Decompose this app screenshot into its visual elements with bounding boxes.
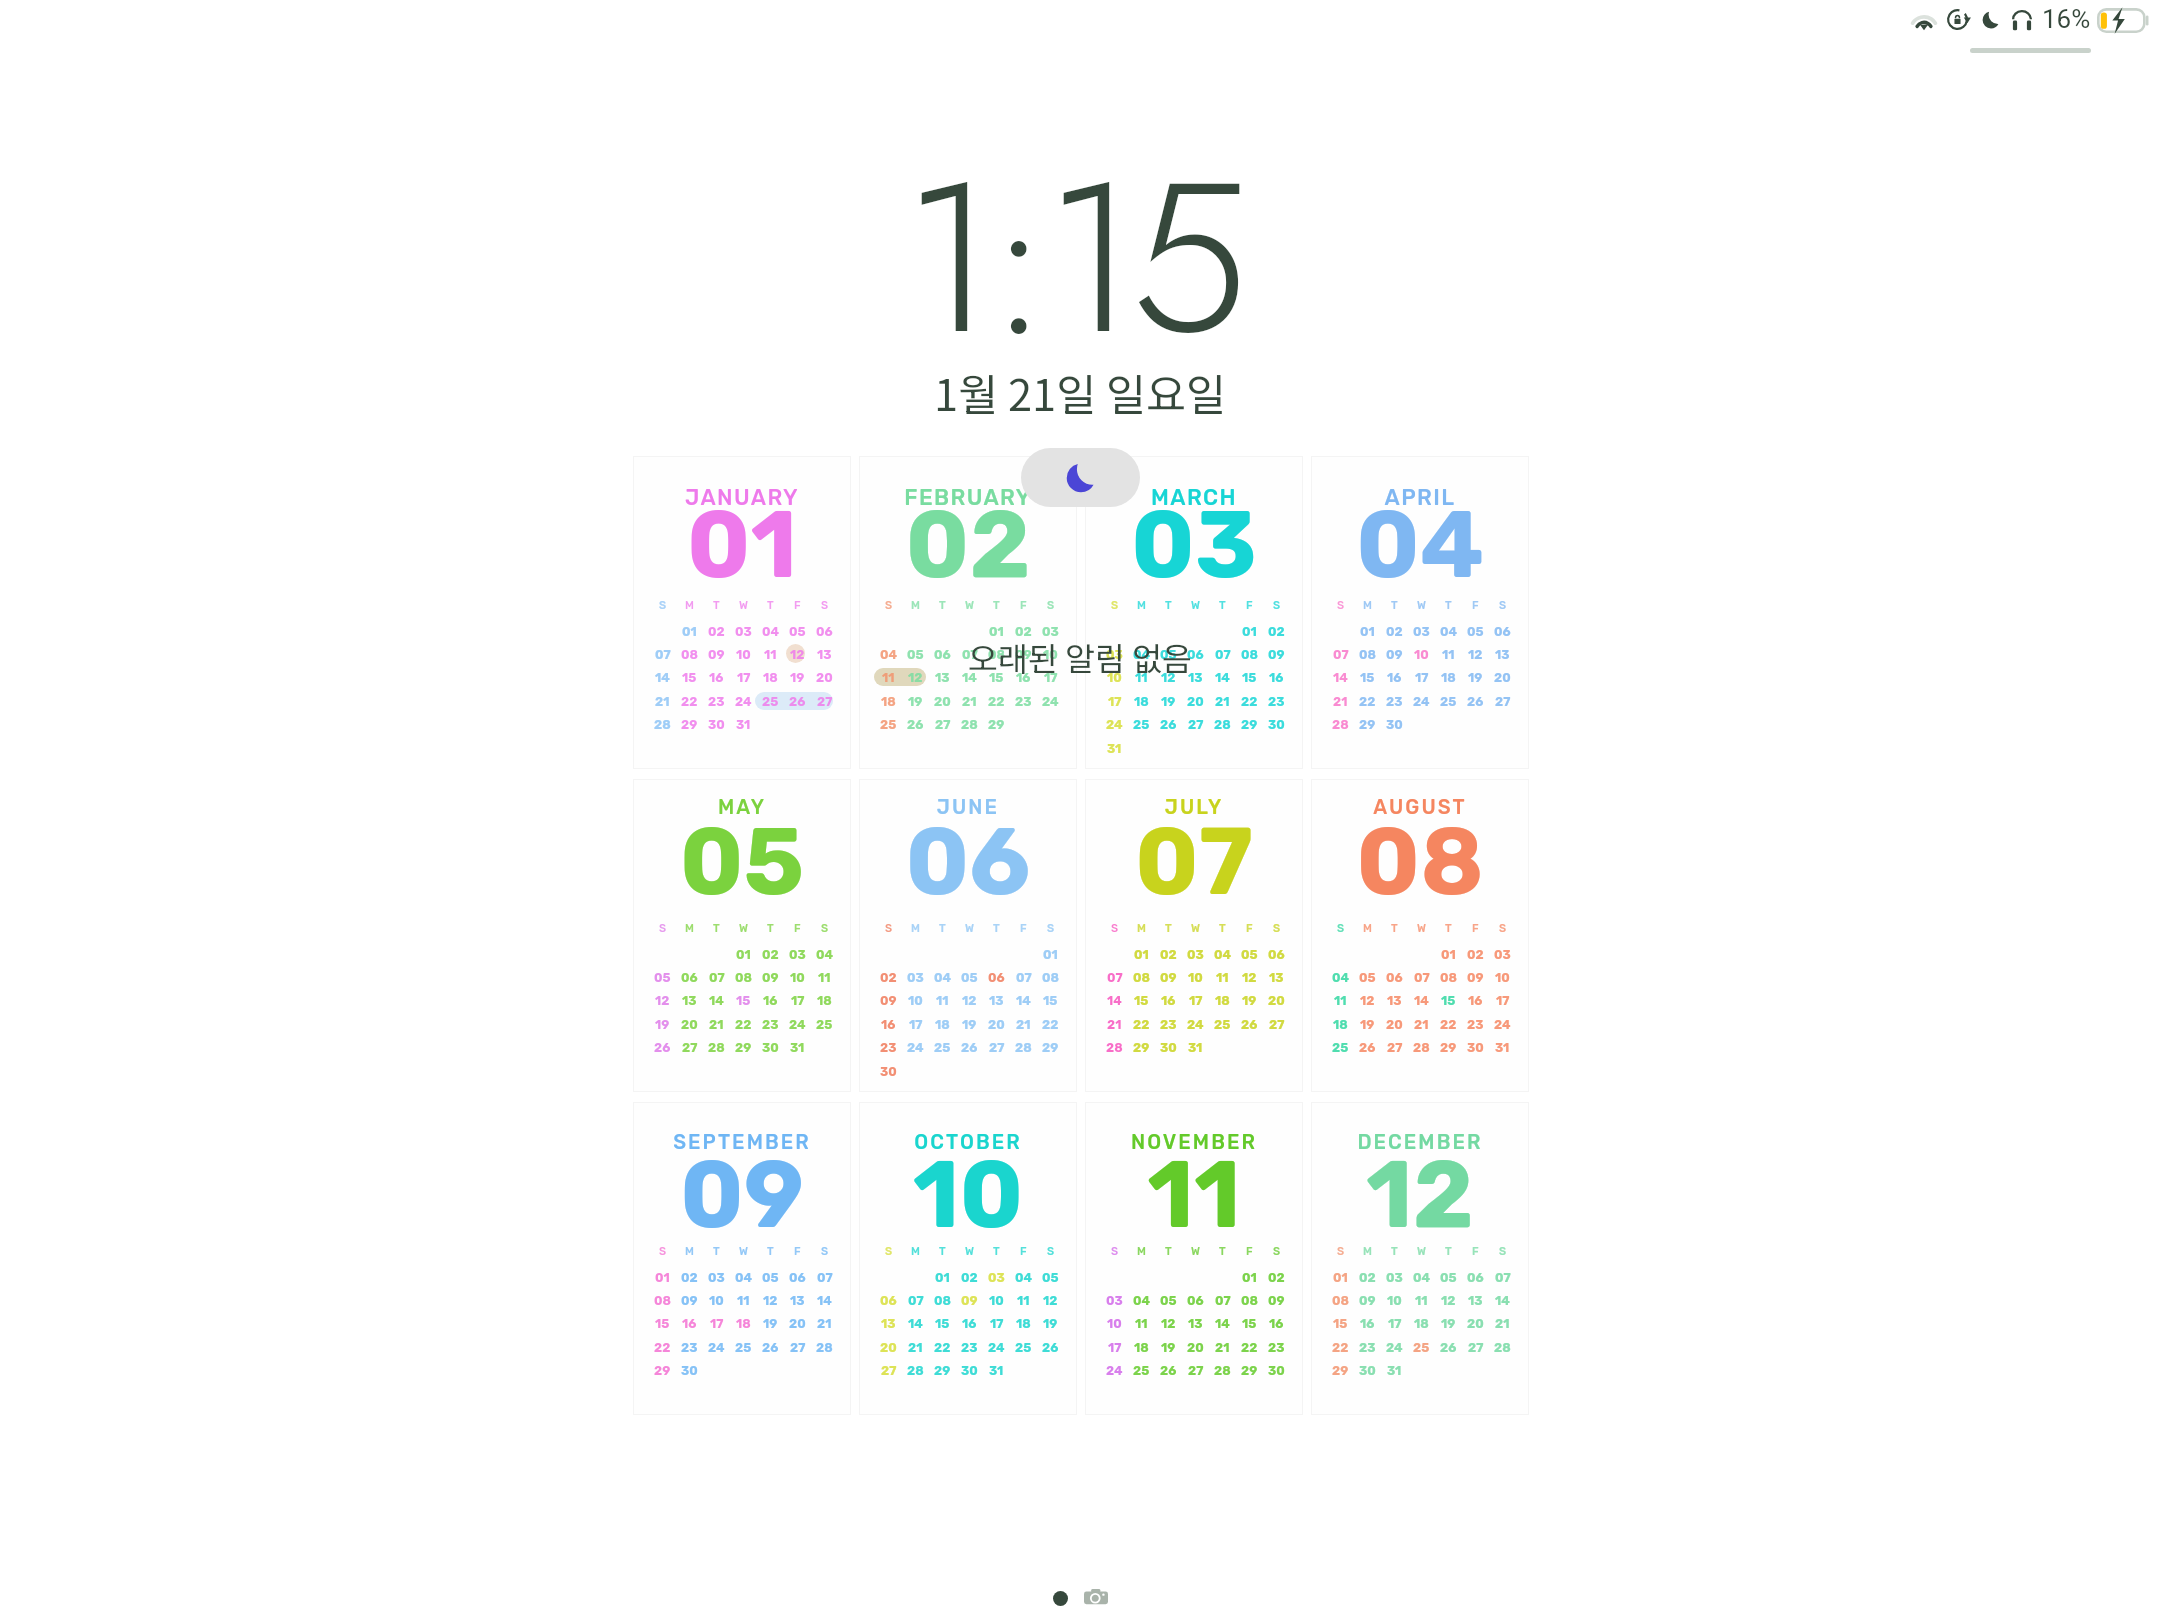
staticText: 03 xyxy=(988,1270,1005,1285)
button[interactable]: DECEMBER xyxy=(1311,1102,1529,1415)
staticText: 03 xyxy=(1413,624,1430,639)
staticText: T xyxy=(1219,1245,1226,1258)
staticText: M xyxy=(685,1245,694,1258)
staticText: 07 xyxy=(1333,647,1349,662)
staticText: 18 xyxy=(763,670,778,685)
staticText: 28 xyxy=(1332,717,1349,732)
staticText: M xyxy=(911,922,920,935)
staticText: 24 xyxy=(1042,694,1059,709)
staticText: 07 xyxy=(1085,806,1303,917)
staticText: S xyxy=(1047,1245,1055,1258)
staticText: 12 xyxy=(790,647,805,662)
staticText: 02 xyxy=(1386,624,1403,639)
staticText: 21 xyxy=(1107,1017,1122,1032)
staticText: M xyxy=(1363,599,1372,612)
staticText: 04 xyxy=(762,624,780,639)
staticText: 18 xyxy=(736,1316,751,1331)
staticText: 26 xyxy=(1241,1017,1258,1032)
staticText: 13 xyxy=(1188,670,1203,685)
staticText: T xyxy=(1165,922,1172,935)
staticText: 18 xyxy=(1441,670,1456,685)
button[interactable]: MARCH xyxy=(1085,456,1303,769)
staticText: 01 xyxy=(1242,624,1257,639)
staticText: 29 xyxy=(654,1363,671,1378)
staticText: 18 xyxy=(881,694,896,709)
staticText: 06 xyxy=(789,1270,806,1285)
staticText: M xyxy=(1137,922,1146,935)
button[interactable]: AUGUST xyxy=(1311,779,1529,1092)
button[interactable]: NOVEMBER xyxy=(1085,1102,1303,1415)
staticText: 25 xyxy=(1440,694,1457,709)
staticText: T xyxy=(767,599,774,612)
staticText: F xyxy=(1472,922,1479,935)
button[interactable]: SEPTEMBER xyxy=(633,1102,851,1415)
button[interactable]: FEBRUARY xyxy=(859,456,1077,769)
staticText: 14 xyxy=(1215,670,1230,685)
staticText: 26 xyxy=(789,694,806,709)
staticText: 10 xyxy=(736,647,751,662)
staticText: 18 xyxy=(817,993,832,1008)
button[interactable]: Do not disturb xyxy=(1021,448,1140,507)
staticText: T xyxy=(1165,599,1172,612)
staticText: 05 xyxy=(633,806,851,917)
staticText: 03 xyxy=(735,624,752,639)
button[interactable]: OCTOBER xyxy=(859,1102,1077,1415)
staticText: S xyxy=(1337,599,1345,612)
staticText: 06 xyxy=(934,647,951,662)
staticText: 20 xyxy=(1494,670,1511,685)
staticText: 09 xyxy=(1467,970,1484,985)
staticText: 30 xyxy=(1467,1040,1484,1055)
button[interactable]: JULY xyxy=(1085,779,1303,1092)
staticText: 05 xyxy=(1359,970,1376,985)
staticText: 21 xyxy=(1333,694,1348,709)
staticText: 13 xyxy=(989,993,1004,1008)
staticText: 28 xyxy=(907,1363,924,1378)
staticText: 02 xyxy=(681,1270,698,1285)
staticText: W xyxy=(1417,1245,1426,1258)
staticText: 02 xyxy=(1359,1270,1376,1285)
staticText: S xyxy=(1047,599,1055,612)
staticText: 28 xyxy=(1214,717,1231,732)
staticText: 17 xyxy=(909,1017,923,1032)
staticText: 08 xyxy=(1359,647,1376,662)
staticText: 10 xyxy=(709,1293,724,1308)
staticText: 05 xyxy=(961,970,978,985)
staticText: 23 xyxy=(708,694,725,709)
staticText: T xyxy=(939,599,946,612)
staticText: 13 xyxy=(817,647,832,662)
button[interactable]: JANUARY xyxy=(633,456,851,769)
staticText: 14 xyxy=(1333,670,1348,685)
button[interactable]: Assistant xyxy=(1053,1591,1068,1606)
button[interactable]: JUNE xyxy=(859,779,1077,1092)
staticText: 30 xyxy=(1359,1363,1376,1378)
staticText: 11 xyxy=(882,670,895,685)
staticText: T xyxy=(993,599,1000,612)
staticText: T xyxy=(1391,922,1398,935)
other: Wi-Fi xyxy=(1909,9,1939,31)
button[interactable]: MAY xyxy=(633,779,851,1092)
staticText: 23 xyxy=(961,1340,978,1355)
button[interactable]: Camera xyxy=(1084,1588,1108,1606)
staticText: M xyxy=(1363,1245,1372,1258)
staticText: 08 xyxy=(681,647,698,662)
staticText: 10 xyxy=(1414,647,1429,662)
staticText: 29 xyxy=(1241,717,1258,732)
staticText: 29 xyxy=(1133,1040,1150,1055)
staticText: 29 xyxy=(1332,1363,1349,1378)
staticText: 28 xyxy=(708,1040,725,1055)
staticText: 28 xyxy=(1106,1040,1123,1055)
staticText: 29 xyxy=(735,1040,752,1055)
staticText: 14 xyxy=(1414,993,1429,1008)
staticText: 08 xyxy=(934,1293,951,1308)
staticText: 27 xyxy=(790,1340,806,1355)
staticText: 20 xyxy=(1268,993,1285,1008)
staticText: 11 xyxy=(936,993,949,1008)
staticText: 27 xyxy=(881,1363,897,1378)
staticText: 19 xyxy=(1468,670,1483,685)
staticText: S xyxy=(1337,1245,1345,1258)
staticText: T xyxy=(713,599,720,612)
staticText: 18 xyxy=(1134,1340,1149,1355)
staticText: 05 xyxy=(1160,647,1177,662)
staticText: 27 xyxy=(817,694,833,709)
button[interactable]: APRIL xyxy=(1311,456,1529,769)
